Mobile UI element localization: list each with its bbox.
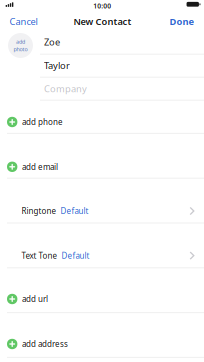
button[interactable]: add url <box>0 291 204 307</box>
staticText: Text Tone <box>21 250 57 261</box>
staticText: add address <box>22 339 68 349</box>
button[interactable]: Cancel <box>9 15 37 28</box>
button[interactable]: add address <box>0 336 204 352</box>
button[interactable]: add email <box>0 159 204 175</box>
staticText: Company <box>44 82 87 95</box>
button[interactable]: Zoe <box>0 35 204 49</box>
staticText: Default <box>61 250 89 261</box>
button[interactable]: Company <box>0 82 204 96</box>
button[interactable]: Done <box>169 15 194 28</box>
button[interactable]: add phone <box>0 114 204 130</box>
staticText: add url <box>22 294 48 304</box>
staticText: New Contact <box>73 15 131 28</box>
staticText: Default <box>60 206 88 216</box>
button[interactable]: Text Tone <box>0 248 204 264</box>
button[interactable]: add <box>8 33 33 58</box>
button[interactable]: Ringtone <box>0 203 204 219</box>
staticText: photo <box>13 46 27 53</box>
button[interactable]: Taylor <box>0 58 204 72</box>
staticText: add email <box>22 161 58 172</box>
staticText: add phone <box>22 117 63 127</box>
staticText: Zoe <box>44 36 60 48</box>
staticText: Cancel <box>9 15 37 28</box>
staticText: add <box>16 38 25 45</box>
staticText: 10:00 <box>93 2 111 10</box>
staticText: Ringtone <box>21 206 56 216</box>
staticText: Taylor <box>44 59 70 71</box>
staticText: Done <box>169 15 194 28</box>
